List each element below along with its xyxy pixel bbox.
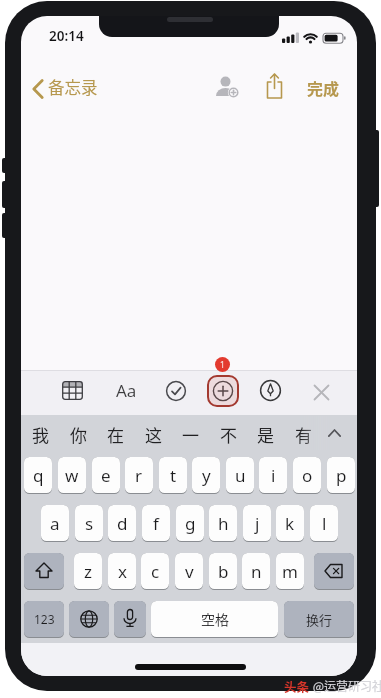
button[interactable]: p <box>327 457 355 493</box>
staticText: Aa <box>116 379 137 402</box>
button[interactable]: n <box>242 553 270 589</box>
staticText: 有 <box>295 422 312 445</box>
staticText: j <box>255 512 260 535</box>
staticText: 头条 <box>284 677 310 695</box>
staticText: a <box>50 512 60 535</box>
button[interactable]: u <box>226 457 254 493</box>
button[interactable] <box>69 601 109 637</box>
staticText: w <box>65 464 79 487</box>
staticText: 空格 <box>201 609 229 629</box>
button[interactable]: 完成 <box>300 73 346 101</box>
staticText: 是 <box>257 422 274 445</box>
staticText: @运营研习社 <box>310 677 381 694</box>
staticText: 这 <box>145 422 162 445</box>
button[interactable]: j <box>243 505 271 541</box>
button[interactable]: 换行 <box>284 601 354 637</box>
staticText: s <box>85 512 94 535</box>
staticText: h <box>218 512 229 535</box>
button[interactable]: 你 <box>65 422 91 445</box>
staticText: 完成 <box>307 76 340 99</box>
staticText: p <box>336 464 347 487</box>
button[interactable]: t <box>159 457 187 493</box>
staticText: 20:14 <box>49 27 84 45</box>
button[interactable]: f <box>142 505 170 541</box>
staticText: 一 <box>182 422 199 445</box>
staticText: 在 <box>107 422 124 445</box>
button[interactable]: q <box>24 457 52 493</box>
staticText: u <box>235 464 246 487</box>
staticText: 你 <box>70 422 87 445</box>
button[interactable]: Aa <box>111 377 141 404</box>
button[interactable]: g <box>176 505 204 541</box>
staticText: t <box>170 464 177 487</box>
staticText: d <box>117 512 128 535</box>
staticText: 1 <box>220 359 225 371</box>
button[interactable]: r <box>125 457 153 493</box>
button[interactable]: 备忘录 <box>29 73 125 101</box>
staticText: r <box>135 464 143 487</box>
button[interactable] <box>114 601 146 637</box>
button[interactable] <box>212 73 242 101</box>
button[interactable]: o <box>293 457 321 493</box>
button[interactable]: b <box>209 553 237 589</box>
button[interactable]: 是 <box>252 422 278 445</box>
button[interactable]: s <box>75 505 103 541</box>
button[interactable] <box>314 553 354 589</box>
button[interactable]: e <box>92 457 120 493</box>
button[interactable]: v <box>175 553 203 589</box>
button[interactable]: 在 <box>102 422 128 445</box>
button[interactable] <box>308 379 335 406</box>
button[interactable]: i <box>259 457 287 493</box>
button[interactable] <box>257 377 284 404</box>
staticText: g <box>185 512 196 535</box>
button[interactable]: c <box>141 553 169 589</box>
button[interactable]: y <box>192 457 220 493</box>
staticText: q <box>33 464 44 487</box>
button[interactable]: 空格 <box>151 601 278 637</box>
staticText: y <box>202 464 211 487</box>
staticText: 备忘录 <box>48 75 98 99</box>
button[interactable] <box>59 377 86 404</box>
button[interactable]: d <box>108 505 136 541</box>
staticText: 不 <box>220 422 237 445</box>
button[interactable] <box>317 416 351 450</box>
staticText: f <box>153 512 159 535</box>
button[interactable]: k <box>276 505 304 541</box>
staticText: c <box>151 560 160 583</box>
button[interactable]: a <box>41 505 69 541</box>
button[interactable]: m <box>276 553 304 589</box>
staticText: x <box>118 560 127 583</box>
staticText: b <box>218 560 229 583</box>
button[interactable]: 123 <box>24 601 64 637</box>
button[interactable]: 一 <box>177 422 203 445</box>
staticText: i <box>271 464 276 487</box>
button[interactable]: 不 <box>215 422 241 445</box>
staticText: v <box>185 560 194 583</box>
staticText: 我 <box>32 422 49 445</box>
staticText: m <box>282 560 298 583</box>
button[interactable]: l <box>310 505 338 541</box>
staticText: l <box>322 512 327 535</box>
staticText: n <box>251 560 262 583</box>
button[interactable]: z <box>74 553 102 589</box>
button[interactable]: w <box>58 457 86 493</box>
button[interactable] <box>162 377 189 404</box>
staticText: o <box>302 464 313 487</box>
staticText: k <box>285 512 295 535</box>
button[interactable]: h <box>209 505 237 541</box>
button[interactable] <box>24 553 64 589</box>
staticText: 换行 <box>306 610 333 629</box>
staticText: 123 <box>34 611 55 627</box>
button[interactable] <box>262 71 287 101</box>
button[interactable] <box>209 377 236 404</box>
button[interactable]: x <box>108 553 136 589</box>
staticText: z <box>84 560 92 583</box>
button[interactable]: 有 <box>290 422 316 445</box>
staticText: e <box>101 464 111 487</box>
button[interactable]: 我 <box>27 422 53 445</box>
button[interactable]: 这 <box>140 422 166 445</box>
